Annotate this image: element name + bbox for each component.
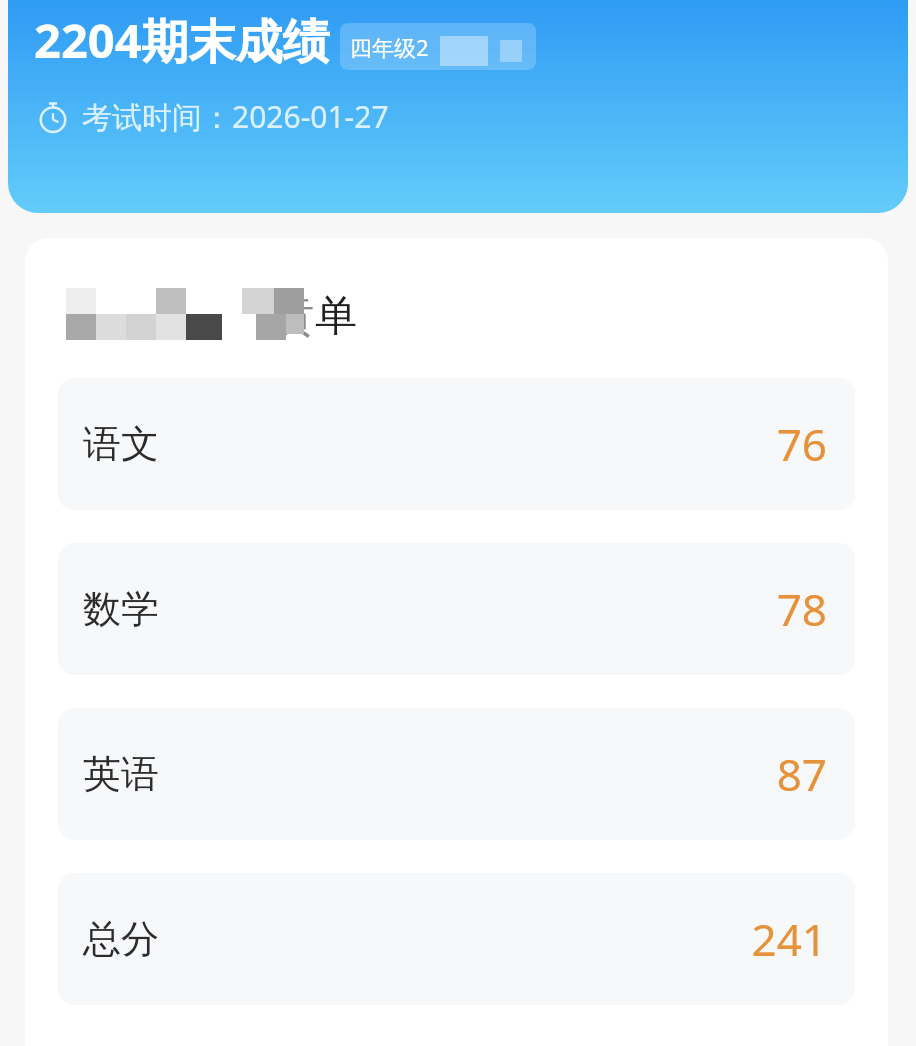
staticText: 语文	[83, 420, 159, 468]
staticText: 76	[776, 414, 827, 474]
staticText: 78	[776, 579, 827, 639]
staticText: 2204期末成绩	[34, 8, 330, 72]
staticText: 四年级2	[350, 32, 429, 62]
other: Exam time	[36, 100, 70, 134]
button[interactable]: 数学	[58, 543, 855, 675]
staticText: 英语	[83, 750, 159, 798]
button[interactable]: Exam time	[36, 96, 389, 137]
staticText: 87	[776, 744, 827, 804]
button[interactable]: 英语	[58, 708, 855, 840]
staticText: 241	[751, 909, 827, 969]
staticText: 单	[315, 290, 357, 343]
staticText: 贡	[274, 292, 314, 342]
staticText: 数学	[83, 585, 159, 633]
button[interactable]: 单	[66, 286, 396, 340]
button[interactable]: 2204期末成绩	[34, 8, 330, 72]
staticText: 总分	[83, 915, 159, 963]
button[interactable]: 语文	[58, 378, 855, 510]
button[interactable]: 总分	[58, 873, 855, 1005]
button[interactable]: 四年级2	[340, 23, 536, 70]
staticText: 考试时间：2026-01-27	[82, 96, 389, 137]
